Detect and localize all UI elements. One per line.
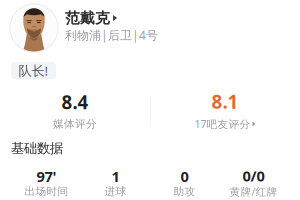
staticText: 8.4 <box>61 90 88 114</box>
staticText: 利物浦|后卫|4号 <box>65 27 158 43</box>
staticText: 1 <box>111 166 119 186</box>
staticText: 媒体评分 <box>53 117 97 130</box>
staticText: 队长! <box>18 62 48 79</box>
button[interactable]: 范戴克 <box>65 9 215 43</box>
staticText: 助攻 <box>173 185 195 198</box>
staticText: 出场时间 <box>24 185 68 198</box>
staticText: 17吧友评分 <box>194 117 250 131</box>
button[interactable]: 8.4 <box>0 90 150 130</box>
staticText: 0 <box>180 166 188 186</box>
button[interactable]: 8.1 <box>150 90 300 130</box>
staticText: 基础数据 <box>11 140 63 156</box>
staticText: 范戴克 <box>65 9 110 27</box>
staticText: 8.1 <box>211 89 238 114</box>
staticText: 0/0 <box>242 166 264 185</box>
staticText: 97' <box>36 166 56 186</box>
staticText: 进球 <box>104 185 126 198</box>
staticText: 黄牌/红牌 <box>229 184 277 199</box>
